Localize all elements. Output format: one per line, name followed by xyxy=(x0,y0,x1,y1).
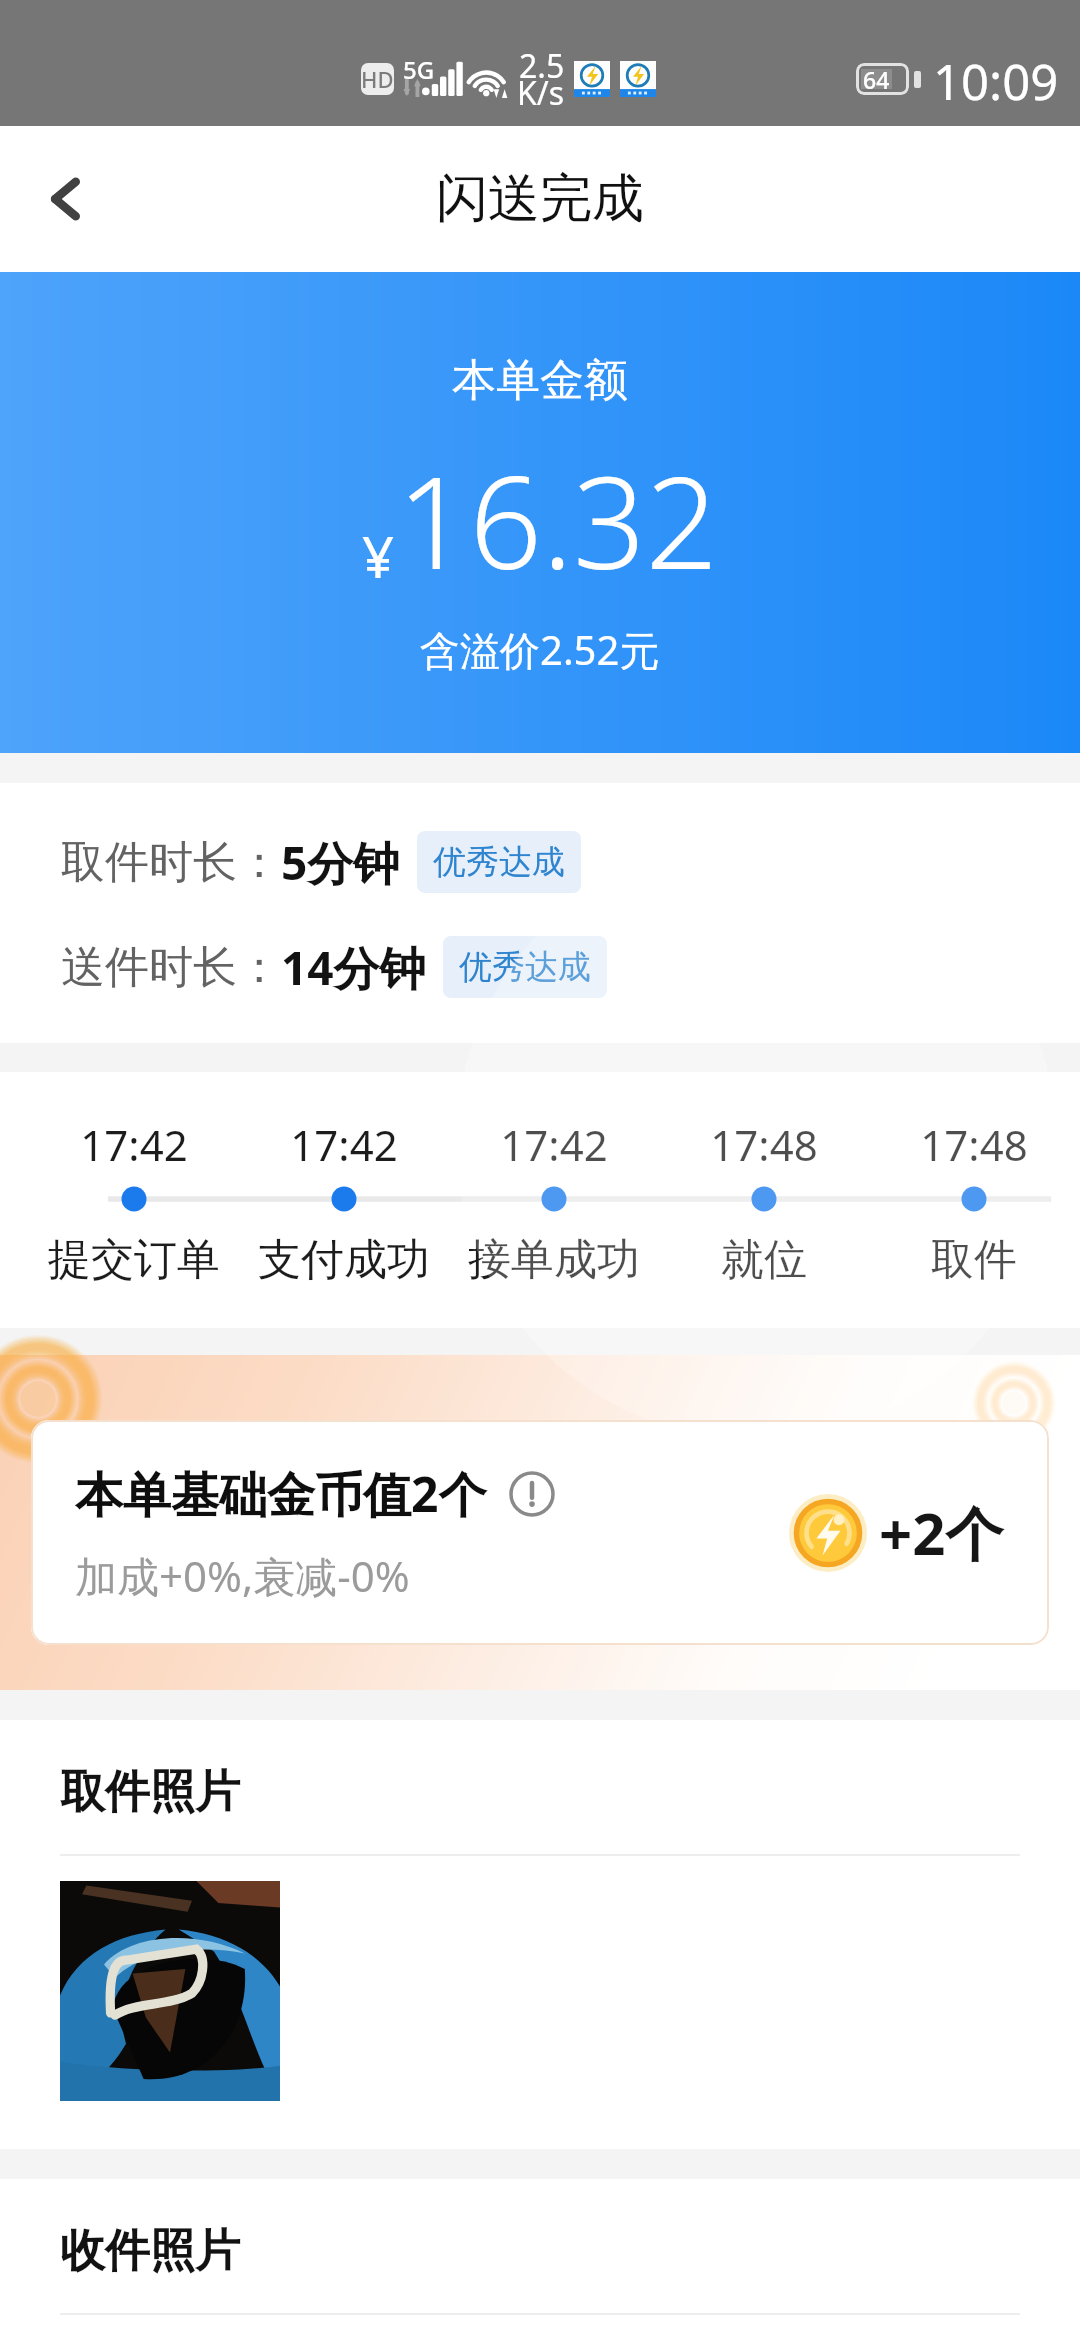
staticText: K/s xyxy=(517,71,565,115)
staticText: 优秀达成 xyxy=(433,841,565,883)
staticText: 2.5 xyxy=(519,44,565,88)
staticText: 就位 xyxy=(659,1233,869,1287)
staticText: 17:42 xyxy=(239,1116,449,1173)
button[interactable]: 本单基础金币值2个 xyxy=(31,1420,1049,1645)
staticText: +2个 xyxy=(879,1493,1004,1572)
staticText: 本单金额 xyxy=(452,353,628,408)
staticText: 5G xyxy=(403,53,435,86)
staticText: 优秀达成 xyxy=(459,946,591,988)
staticText: 64 xyxy=(863,64,890,95)
staticText: 收件照片 xyxy=(60,2223,240,2280)
staticText: 16.32 xyxy=(397,433,719,606)
staticText: 支付成功 xyxy=(239,1233,449,1287)
staticText: ¥ xyxy=(362,518,395,594)
staticText: 取件时长： xyxy=(61,835,281,890)
staticText: 14分钟 xyxy=(281,936,426,998)
staticText: 取件 xyxy=(869,1233,1079,1287)
staticText: 10:09 xyxy=(933,48,1059,115)
staticText: 17:48 xyxy=(869,1116,1079,1173)
staticText: 含溢价2.52元 xyxy=(420,622,660,677)
staticText: 提交订单 xyxy=(29,1233,239,1287)
staticText: 本单基础金币值2个 xyxy=(75,1461,487,1527)
button[interactable]: Back xyxy=(22,156,108,242)
staticText: 接单成功 xyxy=(449,1233,659,1287)
staticText: 5分钟 xyxy=(281,831,400,893)
button[interactable]: 取件照片 xyxy=(60,1881,280,2101)
staticText: 17:42 xyxy=(449,1116,659,1173)
staticText: 送件时长： xyxy=(61,940,281,995)
staticText: HD xyxy=(361,64,394,94)
staticText: 加成+0%,衰减-0% xyxy=(75,1547,410,1604)
staticText: 闪送完成 xyxy=(436,166,644,232)
staticText: 17:48 xyxy=(659,1116,869,1173)
staticText: 17:42 xyxy=(29,1116,239,1173)
staticText: 取件照片 xyxy=(60,1764,240,1821)
